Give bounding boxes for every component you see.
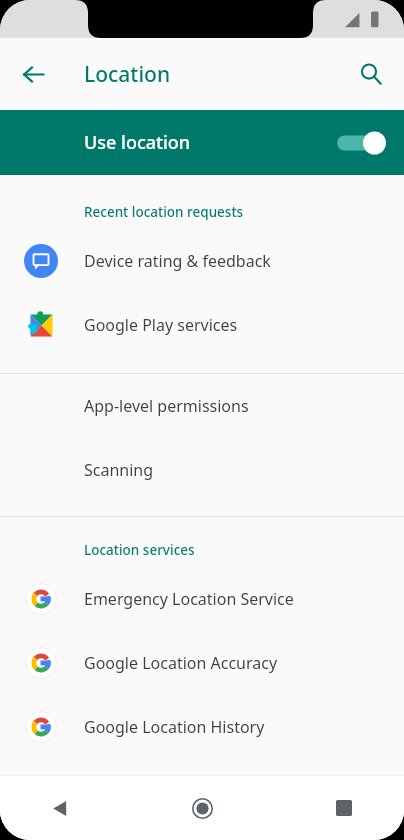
staticText: Recent location requests xyxy=(84,203,244,221)
button[interactable]: Device rating & feedback xyxy=(0,229,404,293)
staticText: Google Location History xyxy=(84,716,265,738)
staticText: Google Play services xyxy=(84,314,238,336)
staticText: Use location xyxy=(84,130,334,155)
staticText: Emergency Location Service xyxy=(84,588,294,610)
button[interactable]: Back xyxy=(10,51,56,97)
button[interactable]: App-level permissions xyxy=(0,374,404,438)
staticText: Device rating & feedback xyxy=(84,250,271,272)
button[interactable]: Use location xyxy=(0,110,404,175)
staticText: Location services xyxy=(84,541,195,559)
button[interactable]: Google Play services xyxy=(0,293,404,357)
staticText: Scanning xyxy=(84,459,154,481)
staticText: Google Location Accuracy xyxy=(84,652,278,674)
button[interactable]: Google Location Accuracy xyxy=(0,631,404,695)
button[interactable]: Google Location History xyxy=(0,695,404,759)
staticText: App-level permissions xyxy=(84,395,249,417)
staticText: Location xyxy=(84,60,171,89)
button[interactable]: Scanning xyxy=(0,438,404,502)
staticText: Google Location Sharing xyxy=(84,780,269,802)
button[interactable]: Home xyxy=(176,782,228,834)
button[interactable]: Recent apps xyxy=(318,782,370,834)
button[interactable]: Search xyxy=(348,51,394,97)
button[interactable]: Google Location Sharing xyxy=(0,759,404,823)
button[interactable]: Emergency Location Service xyxy=(0,567,404,631)
button[interactable]: Back xyxy=(34,782,86,834)
